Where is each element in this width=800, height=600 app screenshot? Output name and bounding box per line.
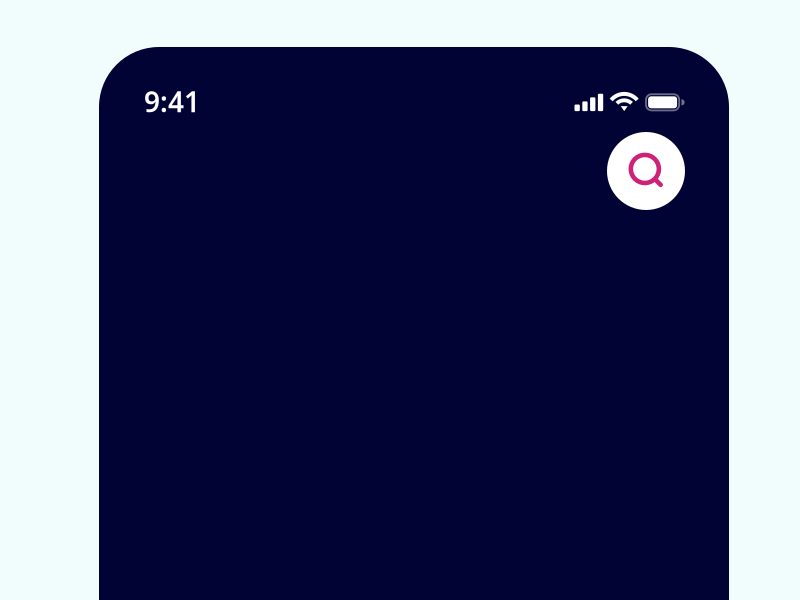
button[interactable]: Search <box>607 132 685 210</box>
staticText: 9:41 <box>144 83 200 120</box>
